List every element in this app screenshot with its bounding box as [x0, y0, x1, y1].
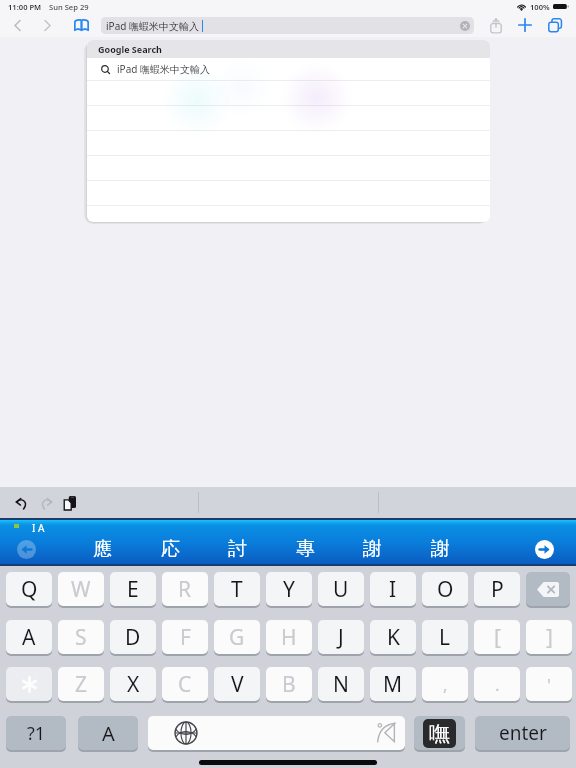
button[interactable]: . [474, 667, 520, 701]
staticText: Q [21, 575, 38, 604]
button[interactable]: [ [474, 620, 520, 654]
button[interactable]: T [214, 572, 260, 606]
staticText: G [229, 623, 245, 652]
button[interactable]: 応 [153, 534, 188, 564]
button[interactable]: A [78, 716, 138, 750]
button[interactable]: ?1 [6, 716, 66, 750]
staticText: 応 [161, 537, 180, 561]
button[interactable]: ' [526, 667, 572, 701]
button[interactable]: F [162, 620, 208, 654]
button[interactable]: X [110, 667, 156, 701]
button[interactable]: Q [6, 572, 52, 606]
button[interactable]: D [110, 620, 156, 654]
button[interactable]: 謝 [355, 534, 390, 564]
button[interactable]: U [318, 572, 364, 606]
staticText: A [22, 623, 36, 652]
button[interactable]: Next candidates [534, 539, 554, 559]
staticText: iPad 嘸蝦米中文輸入 [106, 19, 199, 33]
button[interactable]: W [58, 572, 104, 606]
staticText: K [387, 623, 400, 652]
staticText: Z [75, 670, 88, 699]
button[interactable]: C [162, 667, 208, 701]
staticText: . [495, 673, 500, 696]
button[interactable]: iPad 嘸蝦米中文輸入 [101, 17, 474, 34]
button[interactable]: Redo [34, 491, 58, 515]
staticText: 專 [296, 537, 315, 561]
staticText: U [333, 575, 349, 604]
staticText: Sun Sep 29 [49, 2, 89, 12]
button[interactable]: Symbols [6, 667, 52, 701]
staticText: T [231, 575, 243, 604]
staticText: W [71, 575, 91, 604]
button[interactable] [87, 81, 490, 105]
button[interactable]: R [162, 572, 208, 606]
button[interactable]: Undo [9, 491, 33, 515]
button[interactable]: Paste [58, 491, 82, 515]
staticText: Google Search [98, 43, 162, 55]
staticText: O [437, 575, 454, 604]
button[interactable]: Switch input method [414, 716, 465, 750]
button[interactable]: 謝 [423, 534, 458, 564]
button[interactable]: A [6, 620, 52, 654]
staticText: Y [283, 575, 295, 604]
staticText: C [178, 670, 192, 699]
button[interactable]: Space [148, 716, 405, 750]
button[interactable]: S [58, 620, 104, 654]
staticText: I [389, 575, 397, 604]
button[interactable]: I [370, 572, 416, 606]
button[interactable]: H [266, 620, 312, 654]
button[interactable]: J [318, 620, 364, 654]
staticText: M [383, 670, 403, 699]
button[interactable]: Backspace [526, 572, 570, 606]
button[interactable]: Z [58, 667, 104, 701]
button[interactable]: Bookmarks [72, 16, 90, 34]
button[interactable]: B [266, 667, 312, 701]
button[interactable]: , [422, 667, 468, 701]
button[interactable]: P [474, 572, 520, 606]
staticText: 11:00 PM [8, 2, 42, 12]
button[interactable]: L [422, 620, 468, 654]
staticText: iPad 嘸蝦米中文輸入 [117, 62, 210, 76]
button[interactable]: Share [487, 16, 505, 34]
staticText: J [338, 623, 344, 652]
staticText: H [281, 623, 297, 652]
button[interactable]: enter [475, 716, 570, 750]
button[interactable]: K [370, 620, 416, 654]
button[interactable]: iPad 嘸蝦米中文輸入 [87, 58, 490, 80]
button[interactable]: 應 [85, 534, 120, 564]
staticText: N [333, 670, 349, 699]
button[interactable]: M [370, 667, 416, 701]
button[interactable]: N [318, 667, 364, 701]
button[interactable]: E [110, 572, 156, 606]
button[interactable]: 討 [220, 534, 255, 564]
button[interactable]: ] [526, 620, 572, 654]
staticText: 討 [228, 537, 247, 561]
staticText: B [282, 670, 296, 699]
staticText: E [127, 575, 139, 604]
staticText: 100% [530, 2, 550, 12]
staticText: enter [499, 720, 547, 746]
button[interactable]: Tabs [546, 16, 564, 34]
staticText: S [75, 623, 87, 652]
staticText: L [439, 623, 451, 652]
button[interactable]: 專 [288, 534, 323, 564]
staticText: D [125, 623, 141, 652]
button[interactable]: Back [8, 16, 26, 34]
button[interactable]: Y [266, 572, 312, 606]
button[interactable]: V [214, 667, 260, 701]
button[interactable]: Previous candidates [16, 539, 36, 559]
staticText: P [491, 575, 504, 604]
button[interactable]: O [422, 572, 468, 606]
button[interactable]: G [214, 620, 260, 654]
staticText: 應 [93, 537, 112, 561]
button[interactable]: Forward [38, 16, 56, 34]
staticText: X [127, 670, 140, 699]
staticText: [ [494, 623, 501, 652]
button[interactable]: New tab [516, 16, 534, 34]
staticText: R [178, 575, 192, 604]
